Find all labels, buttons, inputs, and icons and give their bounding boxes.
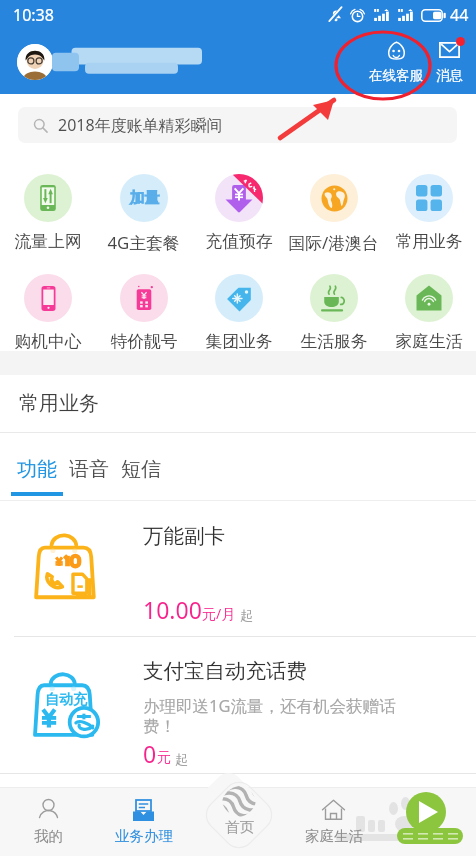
staticText: 4G主套餐 xyxy=(107,231,180,254)
button[interactable]: 购机中心 xyxy=(0,274,96,351)
button[interactable]: Home xyxy=(191,767,266,842)
button[interactable]: 自动充 xyxy=(0,637,476,773)
staticText: 元/月 xyxy=(202,604,236,623)
staticText: 起 xyxy=(175,751,188,767)
staticText: 自动充 xyxy=(45,691,87,709)
staticText: 0 xyxy=(143,738,157,769)
button[interactable]: 充值预存 xyxy=(191,174,286,252)
staticText: 首页 xyxy=(225,818,254,836)
staticText: 支付宝自动充话费 xyxy=(143,658,307,684)
staticText: 生活服务 xyxy=(300,331,368,351)
staticText: 我的 xyxy=(34,827,63,845)
button[interactable]: 万能副卡 xyxy=(0,501,476,636)
staticText: 语音 xyxy=(69,457,109,482)
button[interactable]: 特价靓号 xyxy=(96,274,191,351)
staticText: 常用业务 xyxy=(395,231,463,252)
staticText: 在线客服 xyxy=(369,67,423,84)
button[interactable]: 加量 xyxy=(96,174,191,254)
staticText: 万能副卡 xyxy=(143,523,225,549)
staticText: 家庭生活 xyxy=(305,827,363,845)
staticText: 44 xyxy=(450,4,469,26)
staticText: 办理即送1G流量，还有机会获赠话费！ xyxy=(143,694,401,737)
button[interactable]: 短信 xyxy=(115,453,167,486)
button[interactable]: 常用业务 xyxy=(381,174,476,252)
button[interactable]: 国际/港澳台 xyxy=(286,174,381,254)
staticText: 10.00 xyxy=(143,594,202,625)
button[interactable]: 在线客服 xyxy=(361,37,431,88)
staticText: 起 xyxy=(240,607,253,623)
button[interactable]: 功能 xyxy=(11,453,63,486)
staticText: 集团业务 xyxy=(205,331,273,351)
staticText: 流量上网 xyxy=(14,231,82,252)
staticText: 特价靓号 xyxy=(110,331,178,351)
staticText: 购机中心 xyxy=(14,331,82,351)
staticText: 国际/港澳台 xyxy=(288,231,379,254)
staticText: 元 xyxy=(157,749,171,767)
staticText: 家庭生活 xyxy=(395,331,463,351)
staticText: 短信 xyxy=(121,457,161,482)
button[interactable]: 家庭生活 xyxy=(286,787,381,856)
staticText: 加量 xyxy=(130,189,159,208)
staticText: 业务办理 xyxy=(115,827,173,845)
button[interactable]: 2018年度账单精彩瞬间 xyxy=(18,107,457,143)
staticText: 充值预存 xyxy=(205,231,273,252)
staticText: 消息 xyxy=(436,67,463,84)
button[interactable]: 流量上网 xyxy=(0,174,96,252)
button[interactable]: 生活服务 xyxy=(286,274,381,351)
staticText: 常用业务 xyxy=(19,391,99,416)
button[interactable]: 业务办理 xyxy=(96,787,191,856)
button[interactable]: 消息 xyxy=(433,38,466,88)
button[interactable]: 语音 xyxy=(63,453,115,486)
button[interactable]: 家庭生活 xyxy=(381,274,476,351)
staticText: 10:38 xyxy=(13,4,54,26)
staticText: 功能 xyxy=(17,457,57,482)
button[interactable]: Profile xyxy=(17,44,53,80)
button[interactable]: 我的 xyxy=(0,787,96,856)
staticText: 2018年度账单精彩瞬间 xyxy=(58,114,223,136)
button[interactable]: 集团业务 xyxy=(191,274,286,351)
